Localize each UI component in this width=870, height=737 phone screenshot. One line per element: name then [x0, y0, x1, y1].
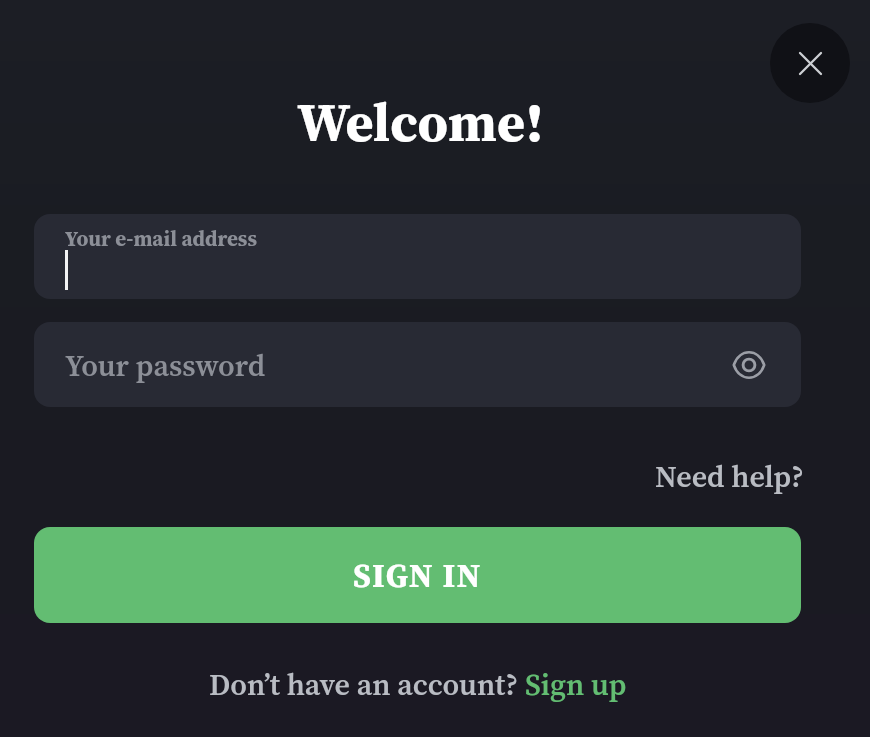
button[interactable]: Your password — [34, 322, 801, 407]
staticText: Welcome! — [37, 85, 804, 159]
staticText: Don’t have an account? — [209, 664, 525, 705]
button[interactable]: Need help? — [655, 456, 804, 497]
button[interactable]: SIGN IN — [34, 527, 801, 623]
button[interactable]: Show password — [723, 339, 775, 391]
button[interactable]: Your e-mail address — [34, 214, 801, 299]
staticText: Your password — [65, 345, 266, 386]
staticText: SIGN IN — [353, 553, 482, 598]
staticText: Your e-mail address — [65, 224, 257, 253]
button[interactable]: Sign up — [525, 664, 627, 705]
button[interactable]: Close — [770, 23, 850, 103]
